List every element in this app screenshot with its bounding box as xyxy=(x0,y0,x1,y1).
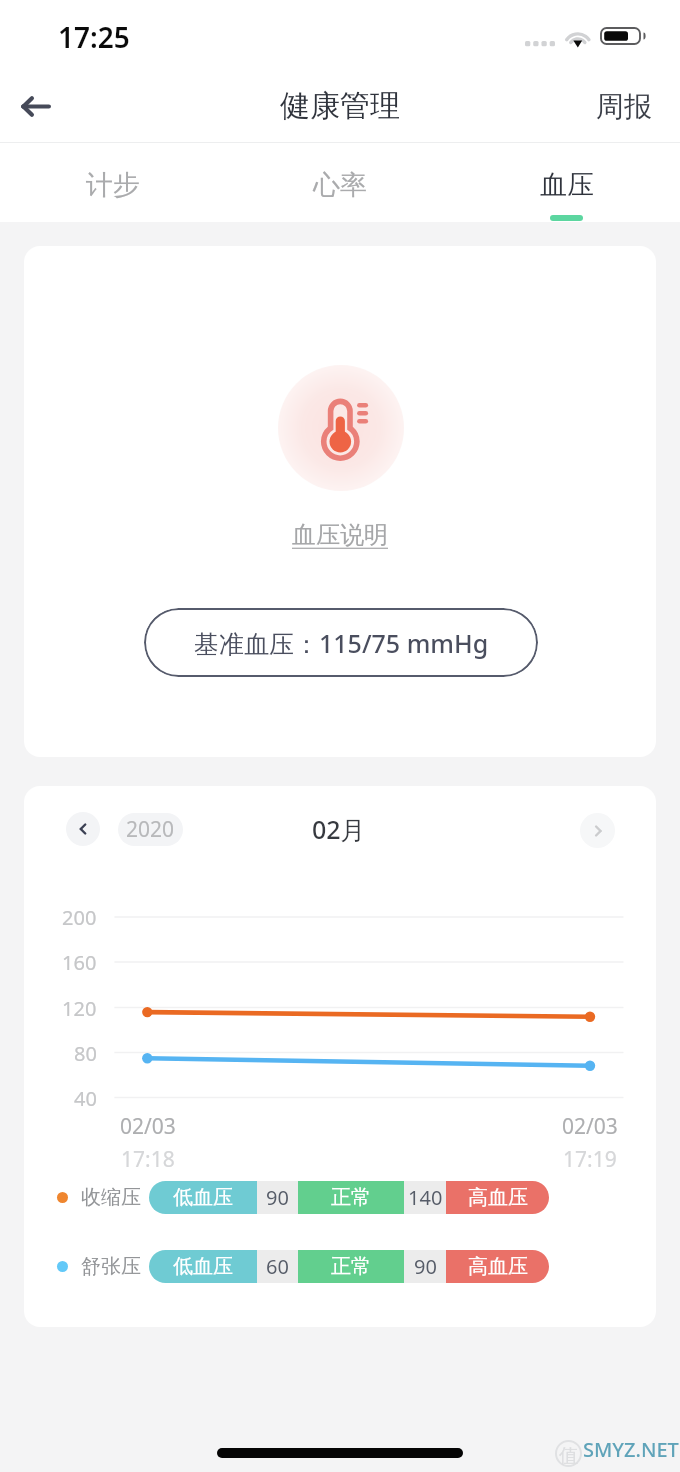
staticText: 舒张压 xyxy=(81,1254,141,1279)
button[interactable]: 基准血压：115/75 mmHg xyxy=(144,608,538,677)
staticText: 收缩压 xyxy=(81,1185,141,1210)
staticText: 周报 xyxy=(596,89,652,124)
staticText: 120 xyxy=(62,995,97,1022)
staticText: 02/03 xyxy=(562,1112,618,1141)
staticText: 40 xyxy=(74,1085,97,1112)
staticText: 高血压 xyxy=(468,1254,528,1279)
staticText: 血压 xyxy=(540,168,594,202)
staticText: 160 xyxy=(62,949,97,976)
button[interactable]: Previous month xyxy=(66,812,100,846)
staticText: 低血压 xyxy=(173,1254,233,1279)
staticText: 90 xyxy=(414,1253,437,1280)
staticText: 90 xyxy=(266,1184,289,1211)
staticText: 17:25 xyxy=(58,18,130,56)
button[interactable]: 血压说明 xyxy=(292,520,388,550)
button[interactable]: 血压 xyxy=(453,143,680,222)
staticText: 正常 xyxy=(331,1254,371,1279)
staticText: 血压说明 xyxy=(292,520,388,550)
button[interactable]: Back xyxy=(8,78,64,134)
staticText: 17:19 xyxy=(563,1145,617,1174)
staticText: 80 xyxy=(74,1040,97,1067)
staticText: 17:18 xyxy=(121,1145,175,1174)
staticText: 值 xyxy=(559,1444,578,1468)
staticText: 心率 xyxy=(313,168,367,202)
staticText: 140 xyxy=(408,1184,443,1211)
staticText: 02月 xyxy=(312,812,366,844)
staticText: 健康管理 xyxy=(280,87,400,125)
staticText: 2020 xyxy=(126,815,175,844)
staticText: SMYZ.NET xyxy=(583,1436,679,1463)
staticText: 正常 xyxy=(331,1185,371,1210)
staticText: 低血压 xyxy=(173,1185,233,1210)
button[interactable]: 计步 xyxy=(0,143,226,222)
staticText: 计步 xyxy=(86,168,140,202)
button[interactable]: 2020 xyxy=(118,813,183,846)
button[interactable]: 心率 xyxy=(226,143,453,222)
staticText: 02/03 xyxy=(120,1112,176,1141)
staticText: 基准血压：115/75 mmHg xyxy=(194,626,489,660)
staticText: 60 xyxy=(266,1253,289,1280)
button[interactable]: 周报 xyxy=(568,73,680,140)
button[interactable]: Next month xyxy=(580,813,615,848)
staticText: 200 xyxy=(62,904,97,931)
staticText: 高血压 xyxy=(468,1185,528,1210)
